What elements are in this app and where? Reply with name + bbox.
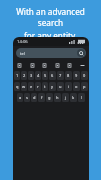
staticText: s: [26, 95, 28, 100]
button[interactable]: s: [24, 93, 30, 102]
button[interactable]: tel: [16, 48, 86, 58]
staticText: 5: [44, 73, 47, 78]
staticText: 8: [67, 73, 70, 78]
button[interactable]: p: [81, 82, 88, 91]
staticText: r: [37, 84, 39, 89]
button[interactable]: 4: [35, 71, 41, 80]
button[interactable]: g: [46, 93, 53, 102]
button[interactable]: 0: [81, 71, 88, 80]
staticText: With an advanced search: [6, 6, 95, 28]
button[interactable]: y: [49, 82, 56, 91]
button[interactable]: Clipboard: [66, 62, 73, 69]
staticText: q: [16, 84, 19, 89]
button[interactable]: w: [21, 82, 27, 91]
button[interactable]: t: [42, 82, 48, 91]
button[interactable]: 3: [28, 71, 34, 80]
staticText: tel: [20, 51, 25, 56]
staticText: 9: [75, 73, 78, 78]
button[interactable]: Voice input: [54, 62, 61, 69]
button[interactable]: e: [28, 82, 34, 91]
staticText: i: [68, 84, 70, 89]
button[interactable]: 1: [14, 71, 20, 80]
staticText: w: [22, 84, 26, 89]
button[interactable]: More: [79, 62, 86, 69]
button[interactable]: Emoji: [16, 62, 23, 69]
button[interactable]: k: [70, 93, 77, 102]
button[interactable]: q: [14, 82, 20, 91]
staticText: 7: [59, 73, 62, 78]
staticText: 1: [16, 73, 19, 78]
staticText: u: [59, 84, 62, 89]
staticText: k: [72, 95, 75, 100]
staticText: for any entity.: [6, 30, 95, 41]
button[interactable]: 8: [65, 71, 72, 80]
staticText: 2: [23, 73, 26, 78]
button[interactable]: f: [38, 93, 45, 102]
staticText: 4: [37, 73, 40, 78]
staticText: t: [44, 84, 46, 89]
staticText: l: [81, 95, 83, 100]
button[interactable]: a: [17, 93, 23, 102]
staticText: 6: [51, 73, 54, 78]
staticText: h: [56, 95, 59, 100]
button[interactable]: Settings: [29, 62, 36, 69]
button[interactable]: 9: [73, 71, 80, 80]
staticText: j: [65, 95, 67, 100]
staticText: 3: [30, 73, 33, 78]
staticText: g: [48, 95, 51, 100]
button[interactable]: h: [54, 93, 61, 102]
staticText: y: [51, 84, 54, 89]
staticText: e: [30, 84, 33, 89]
button[interactable]: 5: [42, 71, 48, 80]
staticText: f: [41, 95, 43, 100]
button[interactable]: Search: [41, 62, 48, 69]
button[interactable]: u: [57, 82, 64, 91]
button[interactable]: 6: [49, 71, 56, 80]
staticText: p: [83, 84, 86, 89]
staticText: a: [19, 95, 22, 100]
button[interactable]: i: [65, 82, 72, 91]
button[interactable]: l: [78, 93, 85, 102]
button[interactable]: j: [62, 93, 69, 102]
staticText: d: [33, 95, 36, 100]
staticText: 0: [83, 73, 86, 78]
button[interactable]: Search: [77, 49, 85, 57]
staticText: 14:06: [17, 39, 28, 45]
button[interactable]: r: [35, 82, 41, 91]
button[interactable]: d: [31, 93, 37, 102]
button[interactable]: o: [73, 82, 80, 91]
button[interactable]: 7: [57, 71, 64, 80]
button[interactable]: 2: [21, 71, 27, 80]
staticText: o: [75, 84, 78, 89]
